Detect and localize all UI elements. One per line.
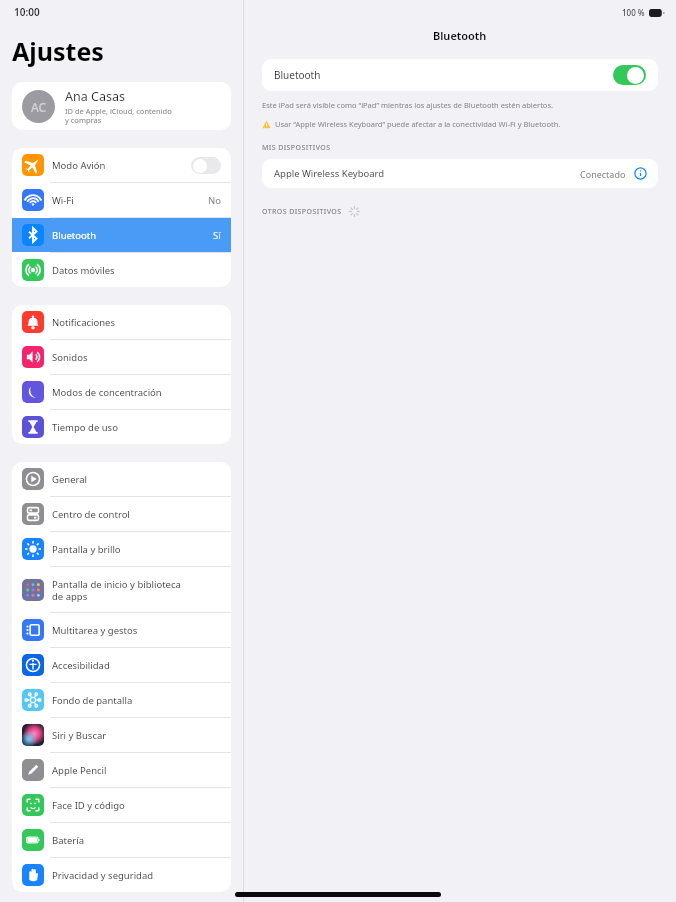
button[interactable]: Siri y Buscar	[12, 718, 231, 752]
button[interactable]: Desactivado	[191, 157, 221, 174]
staticText: Bluetooth	[433, 28, 487, 43]
staticText: Accesibilidad	[52, 659, 110, 672]
staticText: 10:00	[14, 5, 40, 19]
staticText: Fondo de pantalla	[52, 694, 133, 707]
staticText: Modo Avión	[52, 159, 106, 172]
staticText: Tiempo de uso	[52, 421, 118, 434]
staticText: Batería	[52, 834, 84, 847]
button[interactable]: Fondo de pantalla	[12, 683, 231, 717]
staticText: 100 %	[622, 7, 645, 18]
staticText: Multitarea y gestos	[52, 624, 138, 637]
staticText: Sí	[213, 229, 221, 242]
button[interactable]: Datos móviles	[12, 253, 231, 287]
button[interactable]: AC	[12, 82, 231, 130]
staticText: Siri y Buscar	[52, 729, 107, 742]
staticText: Wi-Fi	[52, 194, 74, 207]
button[interactable]: Apple Pencil	[12, 753, 231, 787]
staticText: MIS DISPOSITIVOS	[262, 143, 331, 153]
button[interactable]: Multitarea y gestos	[12, 613, 231, 647]
staticText: Sonidos	[52, 351, 88, 364]
staticText: Privacidad y seguridad	[52, 869, 154, 882]
staticText: Notificaciones	[52, 316, 115, 329]
button[interactable]: Batería	[12, 823, 231, 857]
staticText: Pantalla de inicio y biblioteca de apps	[52, 578, 181, 602]
button[interactable]: Face ID y código	[12, 788, 231, 822]
button[interactable]: Bluetooth	[12, 218, 231, 252]
staticText: Este iPad será visible como “iPad” mient…	[262, 100, 553, 110]
staticText: Face ID y código	[52, 799, 125, 812]
button[interactable]: Activado	[613, 65, 646, 85]
button[interactable]: Tiempo de uso	[12, 410, 231, 444]
staticText: Usar “Apple Wireless Keyboard” puede afe…	[275, 119, 561, 129]
staticText: Centro de control	[52, 508, 130, 521]
button[interactable]: General	[12, 462, 231, 496]
staticText: Bluetooth	[274, 68, 321, 82]
staticText: Conectado	[580, 168, 626, 180]
staticText: Bluetooth	[52, 229, 97, 242]
staticText: Ajustes	[12, 34, 104, 68]
staticText: Apple Wireless Keyboard	[274, 167, 385, 180]
button[interactable]: Pantalla de inicio y biblioteca de apps	[12, 567, 231, 612]
button[interactable]: Privacidad y seguridad	[12, 858, 231, 892]
button[interactable]: Más información	[633, 166, 648, 181]
staticText: Pantalla y brillo	[52, 543, 121, 556]
staticText: Apple Pencil	[52, 764, 107, 777]
staticText: OTROS DISPOSITIVOS	[262, 207, 342, 217]
staticText: No	[208, 194, 221, 207]
button[interactable]: Accesibilidad	[12, 648, 231, 682]
staticText: Datos móviles	[52, 264, 115, 277]
button[interactable]: Pantalla y brillo	[12, 532, 231, 566]
staticText: Modos de concentración	[52, 386, 162, 399]
staticText: Ana Casas	[65, 88, 125, 105]
button[interactable]: Centro de control	[12, 497, 231, 531]
staticText: AC	[31, 99, 47, 115]
button[interactable]: Bluetooth	[262, 59, 658, 91]
button[interactable]: Wi-Fi	[12, 183, 231, 217]
staticText: ID de Apple, iCloud, contenido y compras	[65, 106, 172, 125]
button[interactable]: Notificaciones	[12, 305, 231, 339]
button[interactable]: Modo Avión	[12, 148, 231, 182]
button[interactable]: Modos de concentración	[12, 375, 231, 409]
button[interactable]: Apple Wireless Keyboard	[262, 159, 658, 188]
staticText: General	[52, 473, 88, 486]
button[interactable]: Sonidos	[12, 340, 231, 374]
